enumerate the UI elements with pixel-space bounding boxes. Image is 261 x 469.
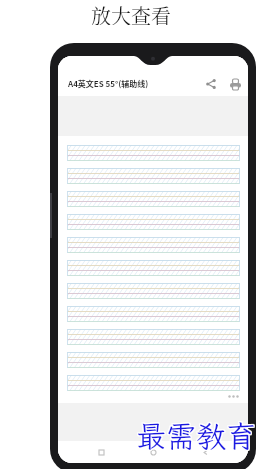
- button[interactable]: Print: [227, 76, 243, 92]
- staticText: 最需教育: [137, 415, 257, 455]
- staticText: 最需教育: [135, 417, 255, 457]
- staticText: 最需教育: [136, 415, 256, 455]
- staticText: 最需教育: [137, 416, 257, 456]
- staticText: 最需教育: [135, 415, 255, 455]
- staticText: 放大查看: [91, 1, 171, 25]
- button[interactable]: Home: [144, 443, 162, 461]
- staticText: A4英文ES 55°(辅助线): [68, 78, 149, 90]
- button[interactable]: Recents: [92, 443, 110, 461]
- staticText: 最需教育: [136, 416, 256, 456]
- staticText: 最需教育: [137, 417, 257, 457]
- staticText: 最需教育: [135, 416, 255, 456]
- button[interactable]: Back: [196, 443, 214, 461]
- staticText: 最需教育: [136, 417, 256, 457]
- button[interactable]: Share: [203, 76, 219, 92]
